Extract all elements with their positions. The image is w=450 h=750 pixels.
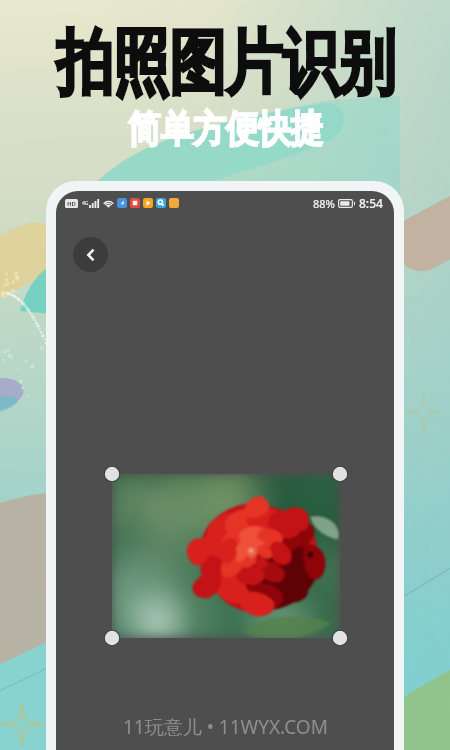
- staticText: HD: [67, 200, 76, 208]
- button[interactable]: Back: [73, 237, 108, 272]
- staticText: 拍照图片识别: [56, 19, 395, 108]
- staticText: 4G: [82, 200, 89, 207]
- staticText: 8:54: [359, 195, 383, 211]
- staticText: 简单方便快捷: [128, 106, 323, 153]
- staticText: 88%: [313, 196, 335, 211]
- staticText: 11玩意儿 • 11WYX.COM: [123, 714, 328, 740]
